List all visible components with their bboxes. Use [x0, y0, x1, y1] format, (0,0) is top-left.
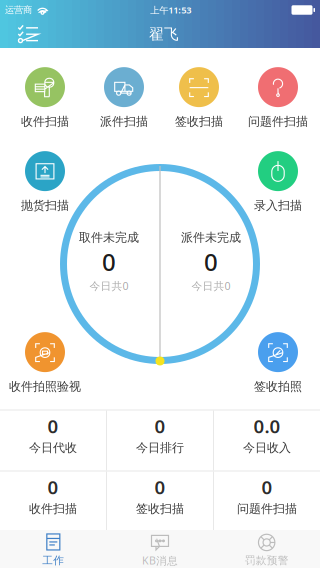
button[interactable]: 0: [0, 410, 106, 470]
staticText: 收件扫描: [29, 501, 77, 516]
button[interactable]: 0.0: [214, 410, 320, 470]
staticText: 收件扫描: [21, 114, 69, 129]
staticText: 派件未完成: [181, 230, 241, 245]
button[interactable]: 任务清单: [8, 20, 48, 48]
staticText: 抛货扫描: [21, 198, 69, 213]
staticText: 0: [154, 474, 165, 499]
staticText: 今日代收: [29, 440, 77, 455]
button[interactable]: 0: [214, 471, 320, 531]
button[interactable]: 签收拍照: [233, 332, 320, 394]
button[interactable]: 0: [107, 471, 213, 531]
staticText: 今日收入: [243, 440, 291, 455]
staticText: 今日共0: [191, 279, 230, 293]
staticText: 罚款预警: [245, 554, 289, 567]
staticText: 今日共0: [89, 279, 128, 293]
staticText: 签收扫描: [136, 501, 184, 516]
button[interactable]: 签收扫描: [154, 67, 244, 129]
staticText: 问题件扫描: [248, 114, 308, 129]
staticText: 工作: [42, 554, 64, 567]
staticText: KB消息: [142, 553, 178, 568]
staticText: 收件拍照验视: [9, 379, 81, 394]
staticText: 问题件扫描: [237, 501, 297, 516]
button[interactable]: 收件拍照验视: [0, 332, 90, 394]
button[interactable]: 问题件扫描: [233, 67, 320, 129]
button[interactable]: 抛货扫描: [0, 151, 90, 213]
button[interactable]: 0: [0, 471, 106, 531]
staticText: 运营商: [5, 4, 32, 16]
button[interactable]: KB消息: [107, 530, 213, 568]
staticText: 0: [102, 246, 116, 278]
staticText: 翟飞: [149, 25, 179, 43]
staticText: 签收拍照: [254, 379, 302, 394]
staticText: 0.0: [253, 413, 280, 438]
button[interactable]: 派件扫描: [79, 67, 169, 129]
button[interactable]: 0: [107, 410, 213, 470]
staticText: 签收扫描: [175, 114, 223, 129]
staticText: 0: [154, 413, 165, 438]
staticText: 取件未完成: [79, 230, 139, 245]
staticText: 派件扫描: [100, 114, 148, 129]
button[interactable]: 录入扫描: [233, 151, 320, 213]
button[interactable]: 工作: [0, 530, 107, 568]
staticText: 今日排行: [136, 440, 184, 455]
button[interactable]: 罚款预警: [213, 530, 320, 568]
staticText: 0: [261, 474, 272, 499]
button[interactable]: 收件扫描: [0, 67, 90, 129]
staticText: 0: [47, 413, 58, 438]
staticText: 上午11:53: [150, 4, 191, 16]
staticText: 录入扫描: [254, 198, 302, 213]
staticText: 0: [47, 474, 58, 499]
staticText: 0: [204, 246, 218, 278]
